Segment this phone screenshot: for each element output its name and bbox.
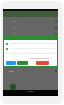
- button[interactable]: [4, 46, 57, 51]
- button[interactable]: [17, 61, 28, 65]
- button[interactable]: [6, 61, 16, 65]
- button[interactable]: Add: [10, 84, 16, 90]
- button[interactable]: [3, 31, 58, 36]
- button[interactable]: [4, 51, 57, 56]
- button[interactable]: [4, 41, 57, 46]
- button[interactable]: [3, 24, 58, 31]
- button[interactable]: [3, 68, 58, 74]
- button[interactable]: [36, 61, 49, 65]
- button[interactable]: [3, 18, 58, 24]
